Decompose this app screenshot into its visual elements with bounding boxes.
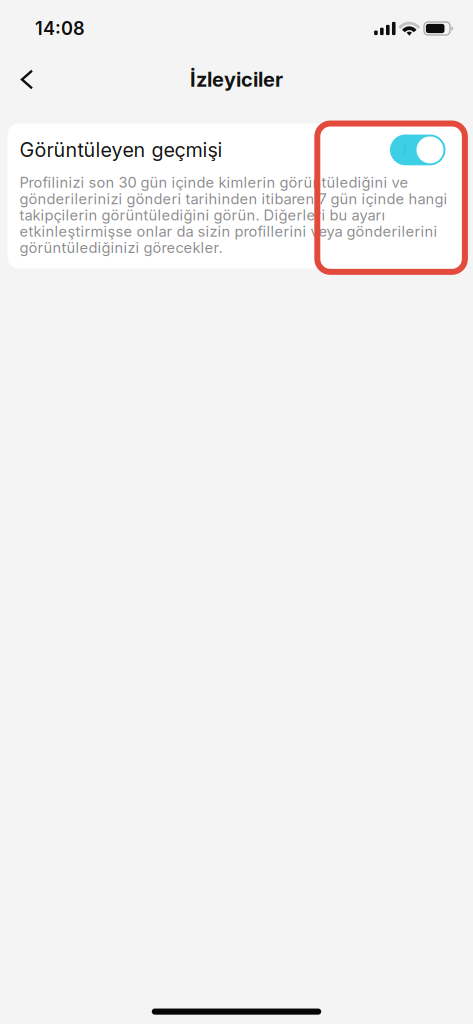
- staticText: 14:08: [35, 17, 85, 39]
- staticText: Görüntüleyen geçmişi: [19, 139, 222, 161]
- button[interactable]: Back: [5, 57, 49, 101]
- staticText: Profilinizi son 30 gün içinde kimlerin g…: [19, 174, 447, 256]
- button[interactable]: Görüntüleyen geçmişi: [390, 134, 445, 165]
- staticText: İzleyiciler: [190, 67, 283, 92]
